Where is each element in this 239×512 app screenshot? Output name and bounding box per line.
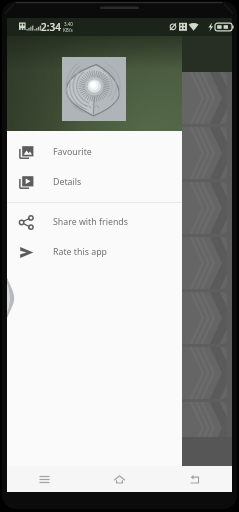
button[interactable] (11, 347, 227, 399)
button[interactable]: Rate this app (7, 237, 182, 267)
button[interactable]: Recent apps (7, 466, 82, 492)
button[interactable]: Share with friends (7, 207, 182, 237)
staticText: 3.40 (64, 21, 73, 27)
button[interactable]: Details (7, 167, 182, 197)
button[interactable] (11, 182, 227, 234)
button[interactable]: Back (157, 466, 232, 492)
button[interactable] (11, 457, 227, 489)
button[interactable]: Home (82, 466, 157, 492)
button[interactable] (11, 127, 227, 179)
button[interactable]: Favourite (7, 137, 182, 167)
button[interactable] (11, 292, 227, 344)
staticText: Rate this app (53, 246, 107, 258)
button[interactable] (11, 402, 227, 454)
staticText: Details (53, 176, 82, 188)
button[interactable] (11, 72, 227, 124)
staticText: Favourite (53, 146, 92, 158)
staticText: KB/s (63, 27, 73, 33)
staticText: 2:34 (41, 20, 61, 34)
staticText: Share with friends (53, 216, 128, 228)
button[interactable] (11, 237, 227, 289)
